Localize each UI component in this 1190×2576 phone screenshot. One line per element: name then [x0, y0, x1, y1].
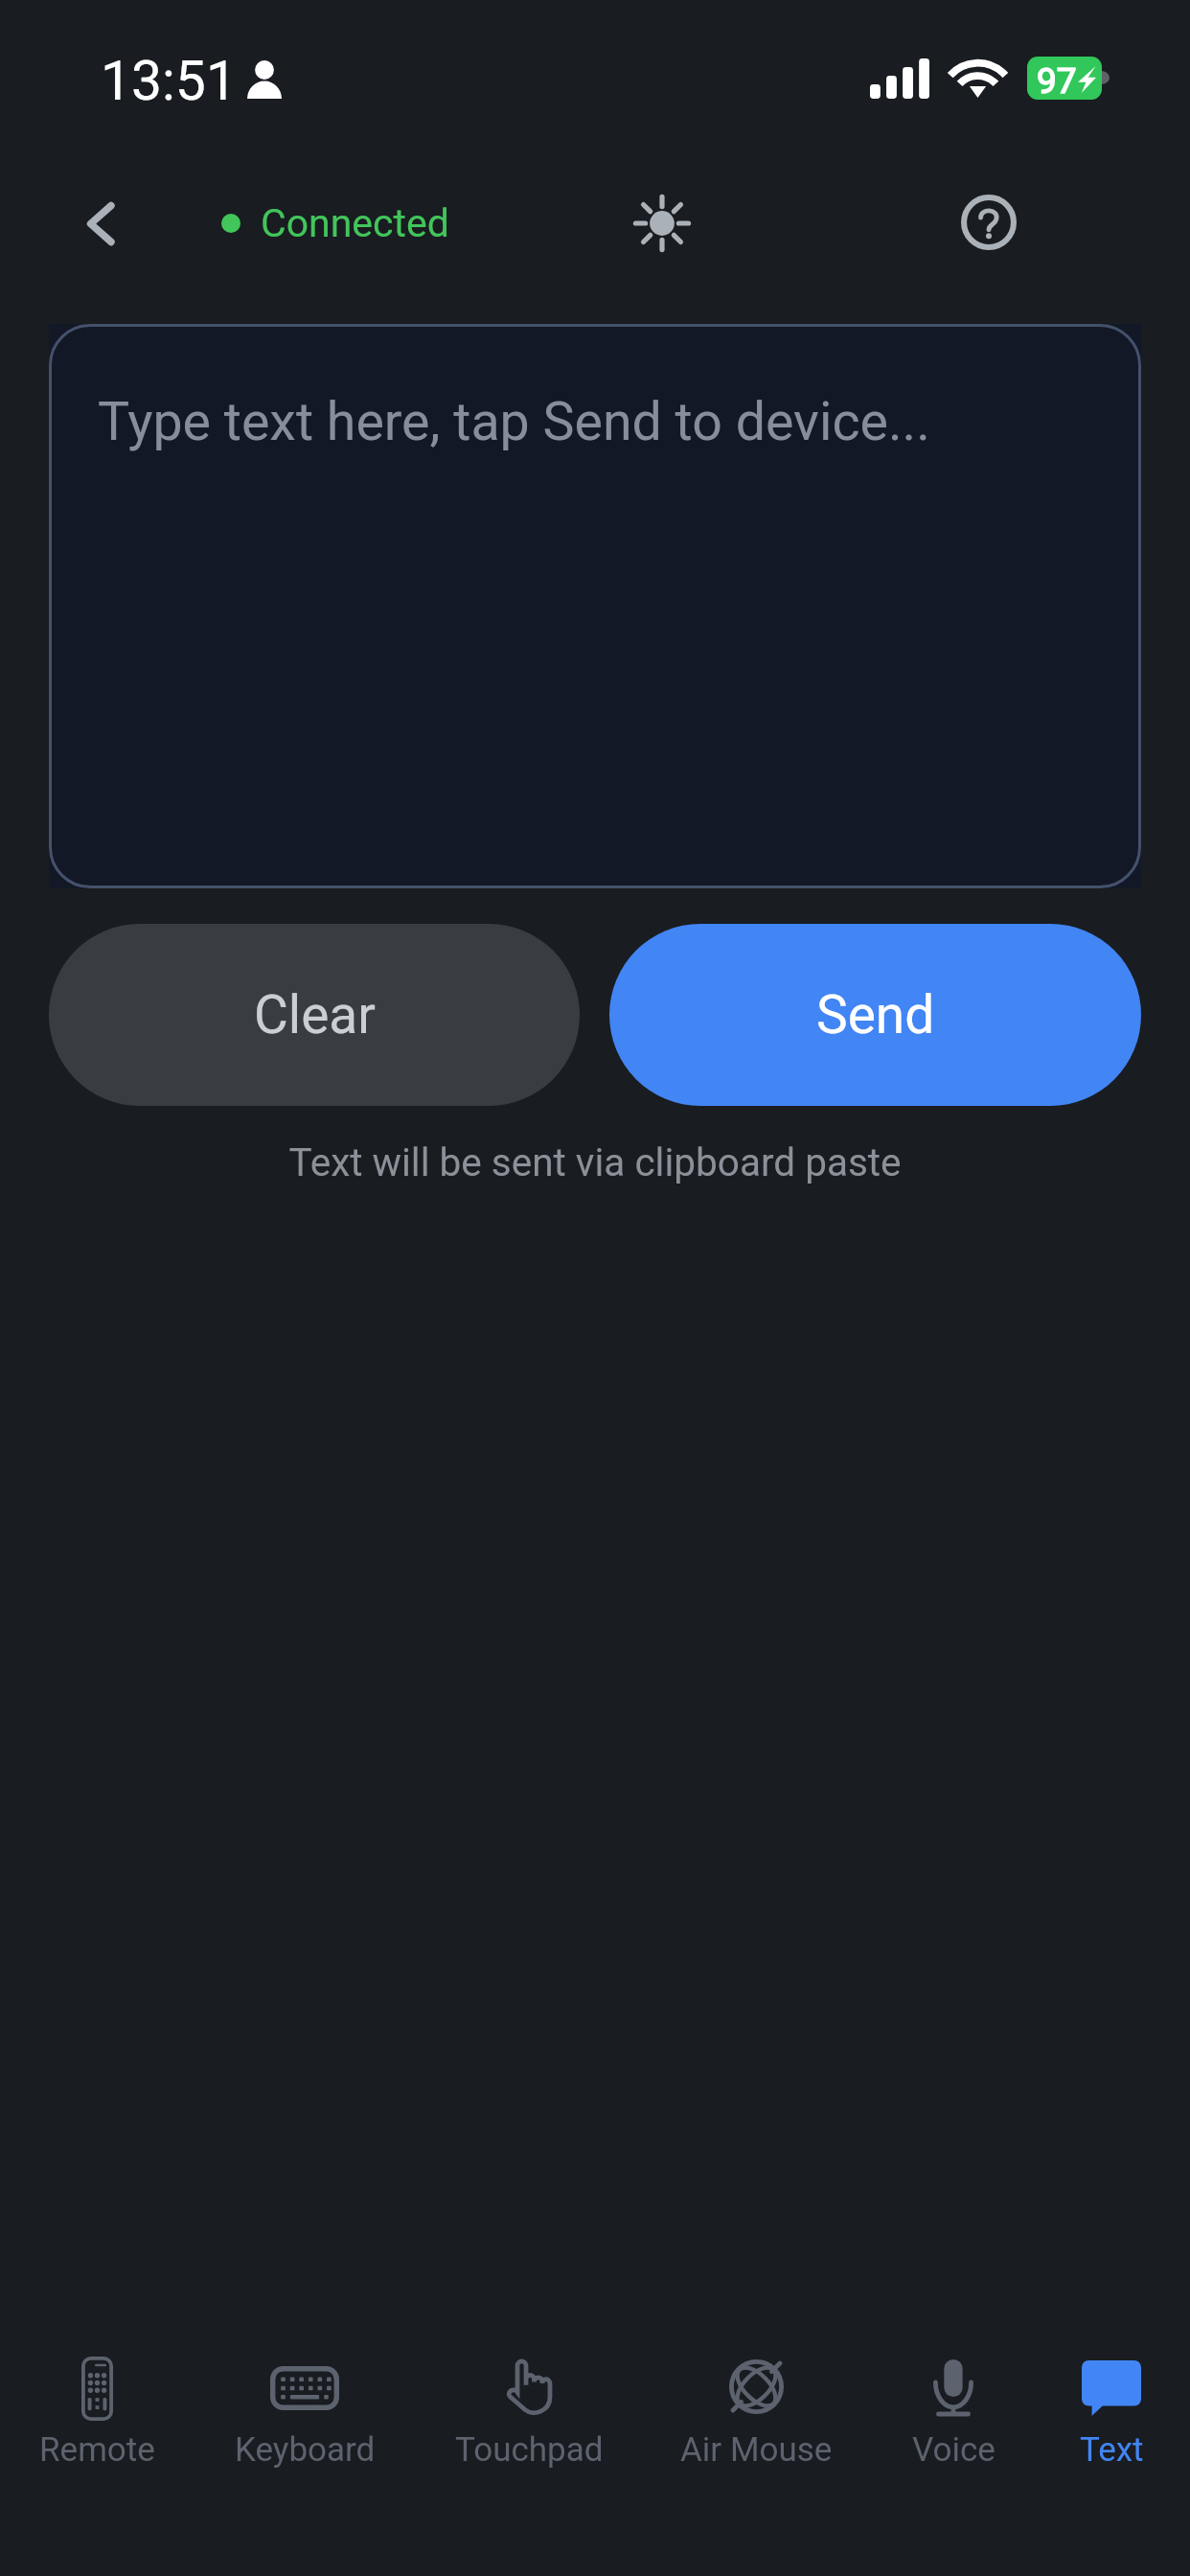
button[interactable]: Send: [609, 924, 1141, 1106]
staticText: Type text here, tap Send to device...: [98, 391, 930, 453]
button[interactable]: Type text here, tap Send to device...: [49, 324, 1141, 888]
staticText: Voice: [912, 2430, 995, 2470]
button[interactable]: Air Mouse: [655, 2346, 857, 2470]
staticText: 13:51: [101, 49, 237, 113]
button[interactable]: Clear: [49, 924, 580, 1106]
staticText: 97: [1037, 60, 1077, 100]
staticText: Clear: [254, 984, 376, 1046]
button[interactable]: Brightness: [624, 185, 700, 262]
staticText: Air Mouse: [680, 2430, 833, 2470]
staticText: Send: [816, 984, 935, 1046]
button[interactable]: Keyboard: [204, 2346, 405, 2470]
button[interactable]: Voice: [853, 2346, 1054, 2470]
button[interactable]: Connected: [221, 189, 449, 258]
button[interactable]: Help: [950, 184, 1027, 261]
button[interactable]: Touchpad: [428, 2346, 629, 2470]
staticText: Remote: [39, 2430, 155, 2470]
button[interactable]: Remote: [0, 2346, 197, 2470]
staticText: Text: [1080, 2430, 1144, 2470]
staticText: Text will be sent via clipboard paste: [0, 1139, 1190, 1184]
button[interactable]: Back: [66, 189, 135, 258]
staticText: Touchpad: [455, 2430, 604, 2470]
button[interactable]: Text: [1011, 2346, 1190, 2470]
staticText: Connected: [261, 200, 449, 246]
staticText: Keyboard: [235, 2430, 376, 2470]
